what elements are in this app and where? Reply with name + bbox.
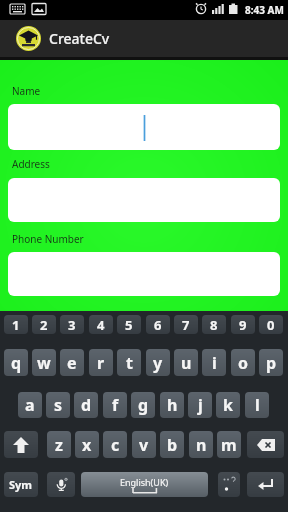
staticText: 5 [125,316,133,334]
staticText: r [97,352,105,374]
staticText: Sym [9,477,33,492]
staticText: 9 [239,316,247,334]
button[interactable]: x [75,431,99,458]
button[interactable]: 1 [4,315,28,334]
button[interactable]: i [202,349,226,376]
staticText: e [67,352,77,374]
staticText: 6 [154,316,162,334]
staticText: a [25,394,35,416]
button[interactable]: p [259,349,283,376]
staticText: 2 [40,316,48,334]
button[interactable]: z [47,431,71,458]
staticText: k [223,394,233,416]
button[interactable]: a [18,392,42,418]
staticText: 4 [97,316,105,334]
staticText: Name [12,84,41,98]
staticText: l [255,394,260,416]
staticText: n [196,434,207,456]
staticText: b [167,434,178,456]
button[interactable]: e [60,349,84,376]
button[interactable]: CreateCv [0,20,288,57]
staticText: q [11,352,22,374]
staticText: i [212,352,217,374]
staticText: f [112,394,119,416]
staticText: CreateCv [49,29,110,48]
button[interactable]: d [74,392,98,418]
button[interactable]: w [32,349,56,376]
staticText: x [82,434,92,456]
button[interactable] [247,431,284,458]
button[interactable] [8,104,280,150]
staticText: s [54,394,63,416]
staticText: m [221,434,237,456]
button[interactable]: k [216,392,240,418]
button[interactable]: 6 [146,315,170,334]
button[interactable] [8,178,280,222]
button[interactable]: y [146,349,170,376]
staticText: 8 [210,316,218,334]
button[interactable]: c [103,431,127,458]
staticText: j [198,394,203,416]
staticText: c [111,434,120,456]
button[interactable] [247,472,284,497]
button[interactable]: 4 [89,315,113,334]
staticText: English(UK) [120,476,169,488]
staticText: p [266,352,277,374]
staticText: y [153,352,163,374]
button[interactable]: 8 [202,315,226,334]
staticText: 7 [182,316,190,334]
button[interactable]: f [103,392,127,418]
staticText: o [238,352,249,374]
button[interactable] [47,472,75,497]
button[interactable]: v [132,431,156,458]
staticText: z [55,434,63,456]
staticText: w [37,352,51,374]
button[interactable]: 7 [174,315,198,334]
staticText: Phone Number [12,232,84,246]
button[interactable]: b [160,431,184,458]
button[interactable]: t [117,349,141,376]
button[interactable]: 5 [117,315,141,334]
button[interactable]: h [160,392,184,418]
button[interactable]: English(UK) [81,472,208,497]
button[interactable]: g [131,392,155,418]
button[interactable]: 9 [231,315,255,334]
staticText: g [138,394,149,416]
staticText: h [167,394,178,416]
staticText: u [181,352,192,374]
button[interactable] [8,252,280,296]
staticText: 8:43 AM [245,3,284,17]
button[interactable]: s [46,392,70,418]
staticText: 1 [12,316,20,334]
button[interactable]: r [89,349,113,376]
staticText: Address [12,157,50,171]
button[interactable] [218,472,240,497]
staticText: 0 [267,316,275,334]
button[interactable]: o [231,349,255,376]
button[interactable]: m [217,431,241,458]
staticText: d [81,394,92,416]
staticText: t [126,352,133,374]
button[interactable] [4,431,38,458]
button[interactable]: q [4,349,28,376]
button[interactable]: 3 [60,315,84,334]
button[interactable]: u [174,349,198,376]
button[interactable]: j [188,392,212,418]
button[interactable]: 0 [259,315,283,334]
staticText: 3 [68,316,76,334]
staticText: v [139,434,149,456]
button[interactable]: l [245,392,269,418]
button[interactable]: 2 [32,315,56,334]
button[interactable]: n [189,431,213,458]
button[interactable]: Sym [4,472,38,497]
